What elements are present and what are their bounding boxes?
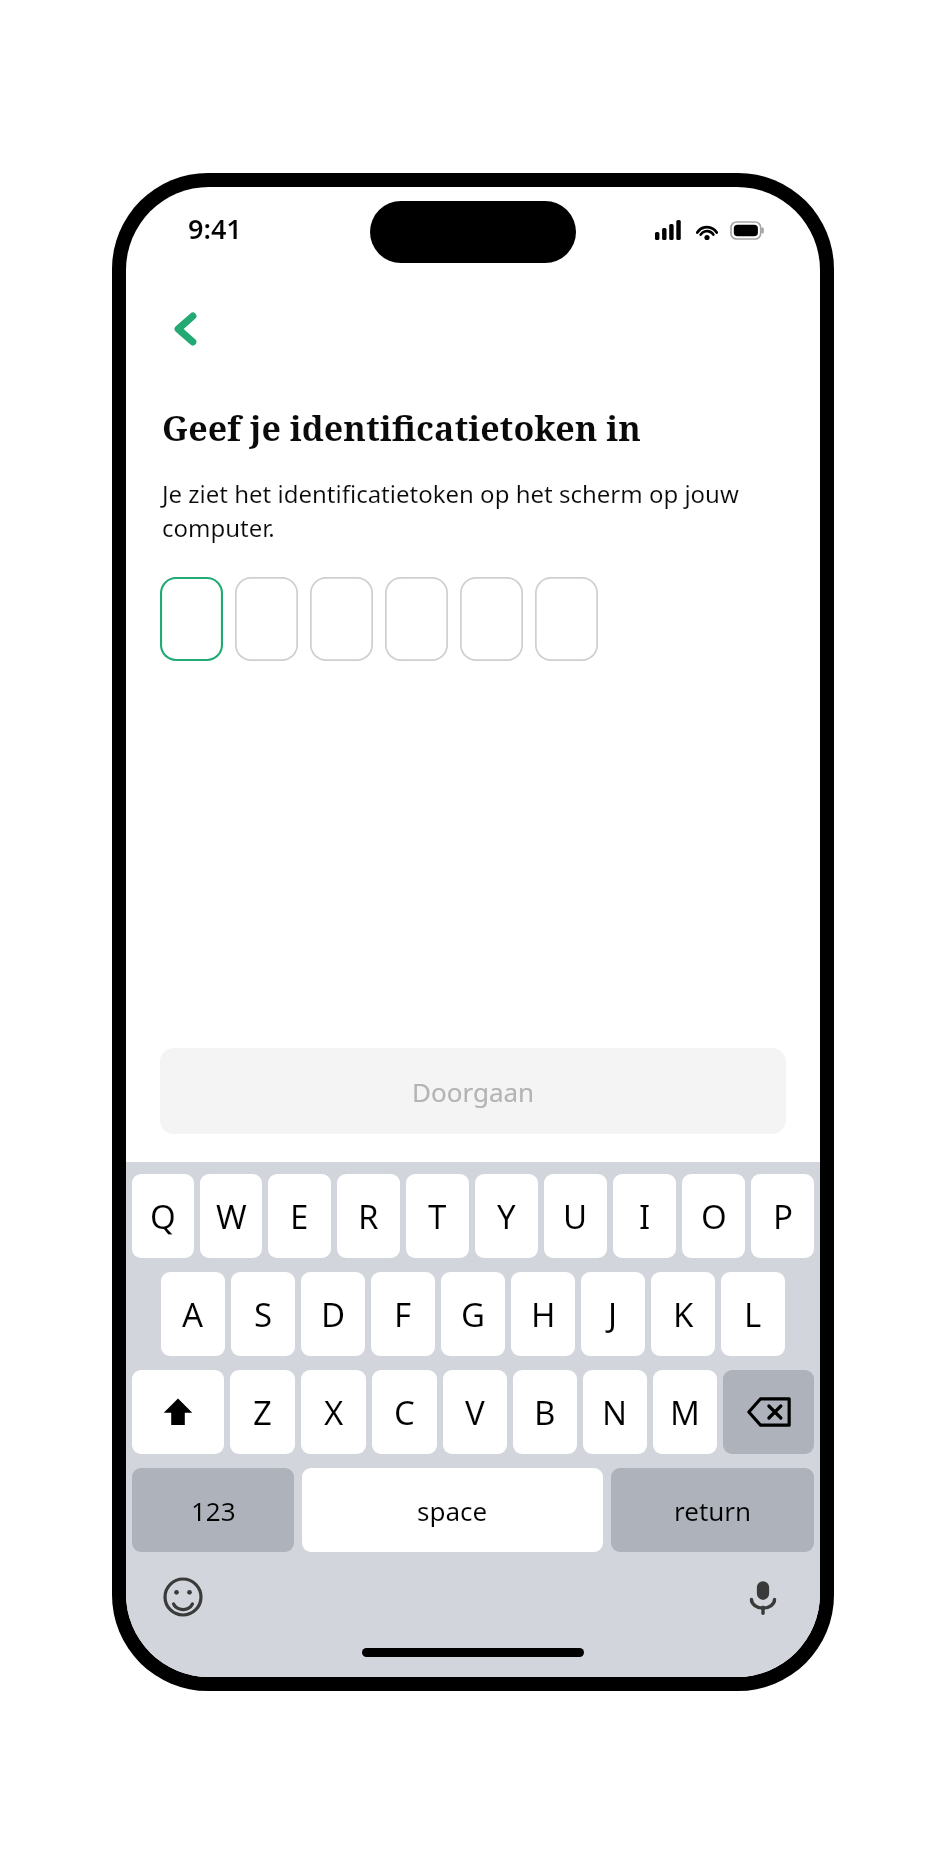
button[interactable]: E: [268, 1174, 331, 1258]
button[interactable]: Token digit 6: [535, 577, 598, 661]
staticText: X: [324, 1390, 344, 1435]
button[interactable]: Back: [148, 291, 224, 367]
button[interactable]: L: [721, 1272, 785, 1356]
button[interactable]: H: [511, 1272, 575, 1356]
staticText: Geef je identificatietoken in: [162, 405, 641, 451]
button[interactable]: return: [611, 1468, 814, 1552]
button[interactable]: 123: [132, 1468, 294, 1552]
button[interactable]: O: [682, 1174, 745, 1258]
staticText: B: [534, 1390, 556, 1435]
staticText: C: [394, 1390, 415, 1435]
staticText: W: [216, 1194, 247, 1239]
staticText: U: [563, 1194, 588, 1239]
button[interactable]: Shift: [132, 1370, 224, 1454]
staticText: J: [608, 1292, 618, 1337]
staticText: H: [531, 1292, 556, 1337]
button[interactable]: W: [200, 1174, 262, 1258]
staticText: I: [639, 1194, 651, 1239]
staticText: F: [394, 1292, 412, 1337]
staticText: R: [358, 1194, 379, 1239]
button[interactable]: Y: [475, 1174, 538, 1258]
staticText: 123: [191, 1493, 236, 1528]
staticText: E: [290, 1194, 309, 1239]
button[interactable]: A: [161, 1272, 225, 1356]
button[interactable]: I: [613, 1174, 676, 1258]
button[interactable]: C: [372, 1370, 437, 1454]
staticText: T: [428, 1194, 447, 1239]
button[interactable]: Token digit 4: [385, 577, 448, 661]
button[interactable]: U: [544, 1174, 607, 1258]
button[interactable]: Token digit 2: [235, 577, 298, 661]
button[interactable]: N: [583, 1370, 647, 1454]
button[interactable]: Emoji: [152, 1566, 214, 1628]
staticText: Z: [253, 1390, 272, 1435]
button[interactable]: T: [406, 1174, 469, 1258]
staticText: L: [744, 1292, 762, 1337]
button[interactable]: space: [302, 1468, 603, 1552]
button[interactable]: D: [301, 1272, 365, 1356]
button[interactable]: Doorgaan: [160, 1048, 786, 1134]
button[interactable]: V: [443, 1370, 507, 1454]
staticText: 9:41: [188, 210, 242, 247]
staticText: Doorgaan: [412, 1074, 535, 1109]
staticText: O: [701, 1194, 727, 1239]
staticText: return: [674, 1493, 752, 1528]
staticText: S: [254, 1292, 273, 1337]
staticText: M: [670, 1390, 700, 1435]
button[interactable]: Q: [132, 1174, 194, 1258]
button[interactable]: R: [337, 1174, 400, 1258]
button[interactable]: F: [371, 1272, 435, 1356]
staticText: Je ziet het identificatietoken op het sc…: [162, 477, 786, 545]
button[interactable]: Token digit 1: [160, 577, 223, 661]
staticText: P: [773, 1194, 793, 1239]
button[interactable]: Token digit 5: [460, 577, 523, 661]
staticText: G: [461, 1292, 486, 1337]
button[interactable]: Token digit 3: [310, 577, 373, 661]
button[interactable]: G: [441, 1272, 505, 1356]
staticText: V: [465, 1390, 485, 1435]
staticText: Y: [497, 1194, 516, 1239]
staticText: Q: [150, 1194, 176, 1239]
button[interactable]: M: [653, 1370, 717, 1454]
button[interactable]: J: [581, 1272, 645, 1356]
button[interactable]: S: [231, 1272, 295, 1356]
button[interactable]: Dictate: [732, 1566, 794, 1628]
staticText: D: [321, 1292, 346, 1337]
button[interactable]: Z: [230, 1370, 295, 1454]
staticText: space: [417, 1493, 488, 1528]
button[interactable]: B: [513, 1370, 577, 1454]
staticText: K: [673, 1292, 694, 1337]
staticText: A: [182, 1292, 204, 1337]
button[interactable]: Backspace: [723, 1370, 814, 1454]
button[interactable]: X: [301, 1370, 366, 1454]
button[interactable]: K: [651, 1272, 715, 1356]
staticText: N: [602, 1390, 628, 1435]
button[interactable]: P: [751, 1174, 814, 1258]
